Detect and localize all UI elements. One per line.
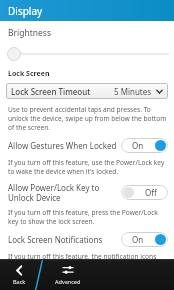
staticText: Lock Screen Notifications [8,234,117,245]
button[interactable]: Allow Gestures When Locked [0,137,174,154]
staticText: Off [145,187,157,198]
staticText: Display [8,4,43,18]
button[interactable]: Allow Power/Lock Key to Unlock Device [0,181,174,204]
staticText: Allow Power/Lock Key to Unlock Device [8,182,117,203]
staticText: Use to prevent accidental taps and press… [8,105,168,132]
staticText: On [132,234,144,245]
button[interactable]: Lock Screen Notifications [0,231,174,248]
button[interactable] [0,47,174,61]
staticText: If you turn off this feature, press the … [8,208,168,226]
staticText: Lock Screen Timeout [11,86,91,97]
button[interactable]: Advanced [39,259,96,290]
staticText: Advanced [55,278,81,285]
staticText: If you turn off this feature, the notifi… [8,252,168,259]
staticText: Back [13,278,26,285]
button[interactable]: Toggle on [121,138,168,153]
button[interactable]: Lock Screen Timeout [6,83,168,99]
button[interactable]: Toggle off [121,185,168,200]
button[interactable]: Back [0,259,39,290]
staticText: On [132,140,144,151]
staticText: Allow Gestures When Locked [8,140,117,151]
button[interactable]: Toggle on [121,232,168,247]
staticText: If you turn off this feature, use the Po… [8,158,168,176]
staticText: Brightness [8,27,51,39]
staticText: Lock Screen [8,69,50,79]
staticText: 5 Minutes [114,86,152,97]
